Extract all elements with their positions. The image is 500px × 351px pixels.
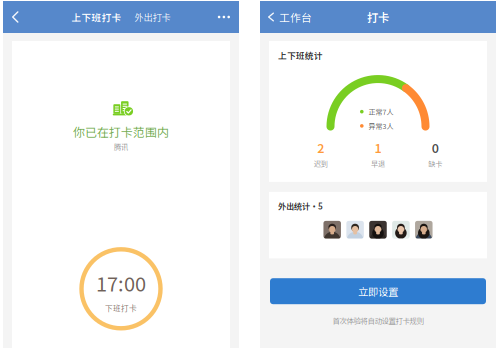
staticText: 外出统计·5 — [278, 200, 323, 212]
staticText: 工作台 — [279, 9, 312, 25]
button[interactable]: 工作台 — [260, 0, 322, 35]
staticText: 异常3人 — [369, 121, 394, 131]
staticText: 正常7人 — [369, 106, 394, 117]
staticText: 下班打卡 — [105, 302, 137, 313]
button[interactable]: 立即设置 — [270, 278, 486, 304]
staticText: 首次体验将自动设置打卡规则 — [332, 315, 423, 326]
button[interactable]: Back — [3, 1, 32, 33]
staticText: 立即设置 — [358, 284, 398, 299]
staticText: 0 — [432, 138, 439, 156]
staticText: 早退 — [371, 158, 385, 169]
button[interactable]: 上下班打卡 — [71, 10, 121, 24]
button[interactable]: More — [205, 3, 239, 31]
button[interactable]: 外出打卡 — [134, 10, 170, 24]
staticText: 打卡 — [367, 9, 389, 25]
staticText: 2 — [317, 138, 324, 156]
staticText: 外出打卡 — [134, 10, 170, 24]
staticText: 迟到 — [314, 158, 328, 169]
staticText: 上下班打卡 — [71, 10, 121, 24]
staticText: 1 — [374, 138, 381, 156]
staticText: 缺卡 — [428, 158, 442, 169]
staticText: 腾讯 — [114, 141, 128, 152]
staticText: 上下班统计 — [278, 49, 323, 61]
staticText: 你已在打卡范围内 — [73, 123, 169, 140]
staticText: 17:00 — [96, 268, 146, 297]
